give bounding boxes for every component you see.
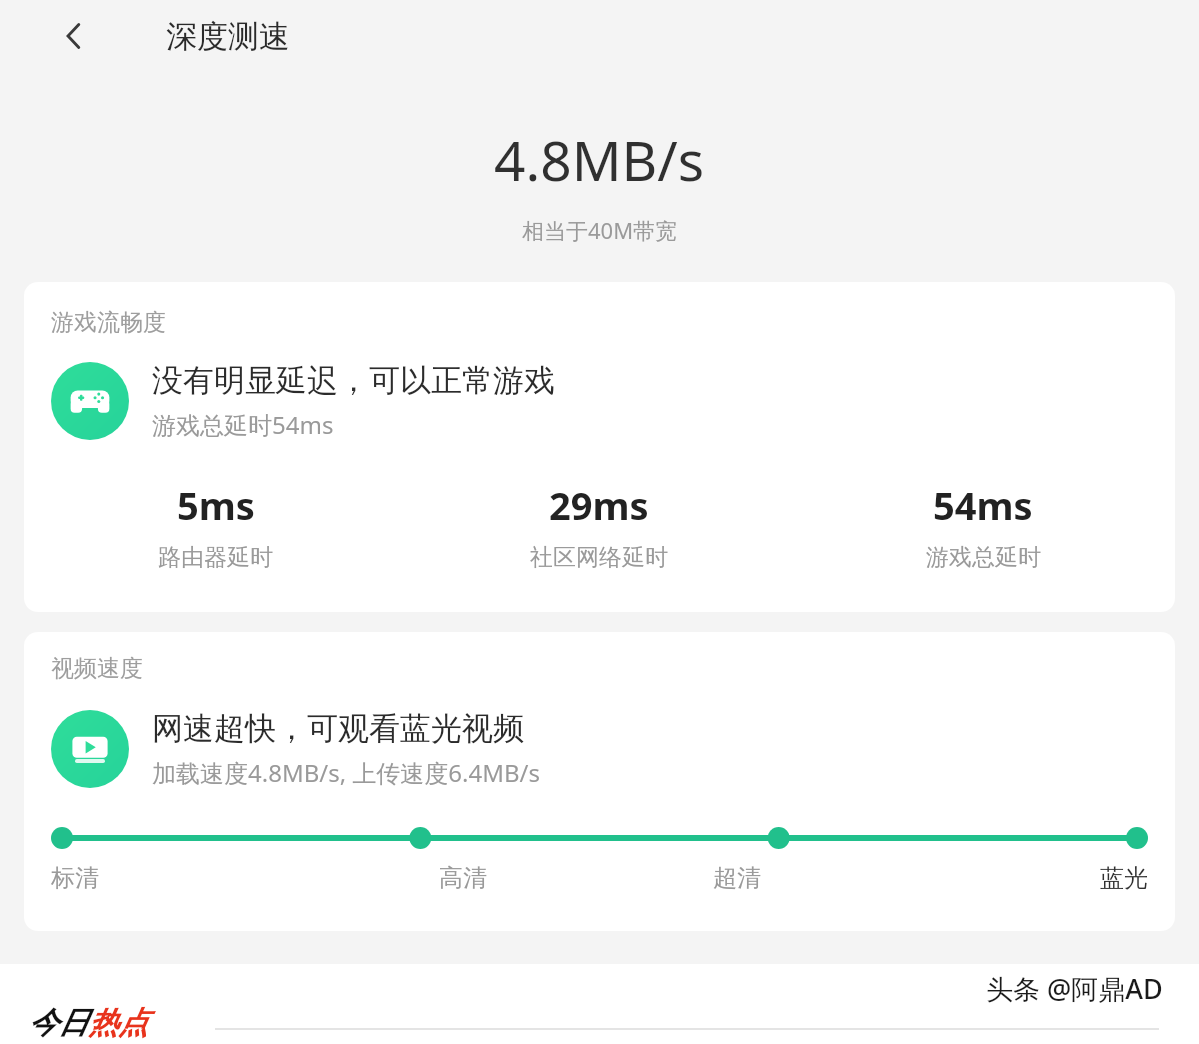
staticText: 头条 @阿鼎AD bbox=[986, 970, 1163, 1004]
staticText: 相当于40M带宽 bbox=[522, 215, 678, 245]
staticText: 社区网络延时 bbox=[530, 543, 668, 572]
staticText: 54ms bbox=[933, 479, 1033, 531]
staticText: 4.8MB/s bbox=[494, 122, 705, 197]
other: Video speed bbox=[51, 710, 129, 788]
staticText: 29ms bbox=[549, 479, 649, 531]
button[interactable]: 游戏流畅度 bbox=[24, 282, 1175, 612]
staticText: 蓝光 bbox=[1100, 863, 1148, 893]
staticText: 标清 bbox=[51, 863, 99, 893]
staticText: 游戏总延时 bbox=[926, 543, 1041, 572]
staticText: 今日 bbox=[28, 1004, 88, 1042]
staticText: 视频速度 bbox=[51, 654, 143, 683]
staticText: 网速超快，可观看蓝光视频 bbox=[152, 709, 524, 748]
button[interactable]: Video quality level bbox=[51, 827, 1148, 849]
staticText: 没有明显延迟，可以正常游戏 bbox=[152, 361, 555, 400]
other: Game latency bbox=[51, 362, 129, 440]
staticText: 加载速度4.8MB/s, 上传速度6.4MB/s bbox=[152, 756, 541, 789]
staticText: 超清 bbox=[713, 863, 761, 893]
staticText: 5ms bbox=[177, 479, 255, 531]
staticText: 热点 bbox=[88, 1004, 148, 1042]
button[interactable]: Back bbox=[46, 8, 102, 64]
button[interactable]: 今日 bbox=[28, 1004, 148, 1042]
staticText: 路由器延时 bbox=[158, 543, 273, 572]
staticText: 高清 bbox=[439, 863, 487, 893]
staticText: 游戏总延时54ms bbox=[152, 408, 334, 441]
staticText: 深度测速 bbox=[166, 17, 290, 56]
button[interactable]: 视频速度 bbox=[24, 632, 1175, 931]
staticText: 游戏流畅度 bbox=[51, 308, 166, 337]
